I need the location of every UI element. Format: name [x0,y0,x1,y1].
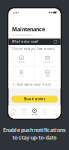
staticText: 9:41 [12,11,19,14]
staticText: › [56,83,57,86]
staticText: to stay up-to-date [12,134,56,141]
staticText: Oil change [18,61,25,63]
button[interactable]: Oil change [8,52,34,66]
staticText: Add maintenance record [17,83,51,86]
staticText: Choose what you have serviced [12,47,55,51]
button[interactable]: Air filter [35,66,60,80]
button[interactable]: Tyres [8,66,34,80]
staticText: Maintenance [12,26,45,33]
staticText: Service [31,113,37,115]
staticText: Home [12,113,16,115]
staticText: Air filter [45,75,50,77]
staticText: Enable push notifications [3,126,66,133]
button[interactable]: Add maintenance record [8,81,60,88]
staticText: Tyres [19,75,24,77]
button[interactable]: What is due now? [8,38,60,45]
button[interactable]: Shop [40,105,50,118]
button[interactable]: Home [8,105,19,118]
button[interactable]: Brake pads [35,52,60,66]
staticText: What is due now? [12,40,38,43]
button[interactable]: More [50,105,60,118]
button[interactable]: Show 4 services [11,96,58,103]
staticText: Show 4 services [24,97,45,101]
button[interactable]: Trips [19,105,29,118]
staticText: More [53,113,57,115]
staticText: Brake pads [43,61,52,63]
button[interactable]: Service [29,105,40,118]
staticText: Trips [22,113,26,115]
staticText: Service due dates and history [12,34,33,36]
